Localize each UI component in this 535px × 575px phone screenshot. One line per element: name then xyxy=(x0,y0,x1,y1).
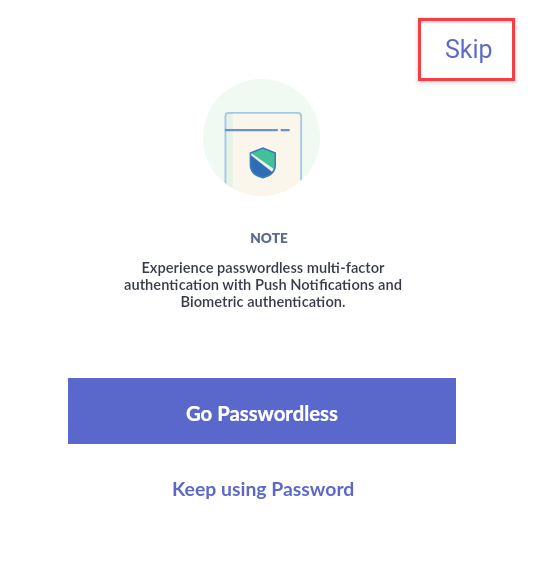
other: Passwordless illustration xyxy=(203,79,320,196)
button[interactable]: Skip xyxy=(418,18,515,81)
button[interactable]: Go Passwordless xyxy=(68,378,456,444)
staticText: NOTE xyxy=(250,230,288,246)
button[interactable]: Keep using Password xyxy=(153,472,373,504)
staticText: Experience passwordless multi-factor aut… xyxy=(98,259,428,310)
staticText: Go Passwordless xyxy=(186,401,338,425)
staticText: Skip xyxy=(445,35,493,64)
staticText: Keep using Password xyxy=(172,477,355,500)
